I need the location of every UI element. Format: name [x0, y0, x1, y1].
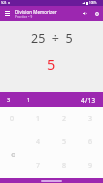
button[interactable]: Navigation menu: [0, 6, 15, 21]
staticText: 25 ÷ 5: [31, 30, 73, 47]
staticText: Practice • 9: [15, 15, 33, 19]
staticText: 4: [36, 137, 41, 147]
staticText: 9: [88, 161, 93, 171]
button[interactable]: Options: [91, 6, 103, 21]
button[interactable]: Backspace: [0, 131, 25, 178]
staticText: Division Memorizer: [15, 9, 57, 15]
staticText: 4/13: [81, 96, 96, 104]
staticText: 3: [88, 114, 93, 124]
staticText: 6: [88, 137, 93, 147]
staticText: 1: [27, 96, 31, 103]
staticText: 2: [62, 114, 67, 124]
staticText: 5: [62, 137, 67, 147]
staticText: 1: [36, 114, 41, 124]
staticText: 7: [36, 161, 41, 171]
staticText: 5: [47, 54, 56, 74]
staticText: 0: [10, 114, 15, 124]
staticText: 9:25: [1, 1, 7, 5]
button[interactable]: Sound: [79, 6, 91, 21]
staticText: 8: [62, 161, 67, 171]
staticText: 3: [7, 96, 11, 103]
staticText: 100%: [89, 1, 97, 5]
